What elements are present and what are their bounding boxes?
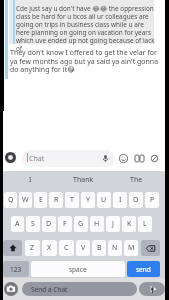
- button[interactable]: K: [122, 216, 136, 232]
- staticText: They don't know I offered to get the vel…: [10, 48, 160, 74]
- button[interactable]: I: [113, 192, 127, 208]
- staticText: Y: [86, 195, 90, 205]
- staticText: send: [136, 265, 151, 274]
- button[interactable]: Z: [25, 240, 40, 256]
- button[interactable]: Voice message: [98, 151, 112, 165]
- button[interactable]: B: [92, 240, 106, 256]
- button[interactable]: G: [74, 216, 88, 232]
- staticText: The: [130, 175, 143, 185]
- staticText: G: [78, 219, 84, 229]
- staticText: I: [119, 195, 122, 205]
- button[interactable]: E: [34, 192, 47, 208]
- staticText: V: [81, 243, 86, 253]
- button[interactable]: S: [26, 216, 40, 232]
- button[interactable]: Y: [81, 192, 95, 208]
- staticText: B: [97, 243, 102, 253]
- button[interactable]: Camera: [4, 282, 18, 296]
- button[interactable]: X: [42, 240, 57, 256]
- button[interactable]: F: [58, 216, 72, 232]
- staticText: Thank: [73, 175, 94, 185]
- staticText: P: [150, 195, 155, 205]
- button[interactable]: T: [65, 192, 79, 208]
- button[interactable]: Send a Chat: [22, 282, 137, 296]
- button[interactable]: Q: [4, 192, 17, 208]
- button[interactable]: O: [129, 192, 143, 208]
- staticText: N: [112, 243, 118, 253]
- button[interactable]: N: [108, 240, 122, 256]
- button[interactable]: Thank: [57, 171, 110, 189]
- button[interactable]: D: [42, 216, 56, 232]
- staticText: I: [29, 175, 32, 185]
- button[interactable]: send: [127, 261, 160, 277]
- button[interactable]: Shift: [3, 240, 22, 256]
- button[interactable]: Open camera: [5, 152, 16, 163]
- staticText: Cde just say u don't have 😂😂 the oppress…: [16, 4, 156, 53]
- button[interactable]: space: [31, 261, 125, 277]
- button[interactable]: V: [76, 240, 90, 256]
- staticText: F: [63, 219, 67, 229]
- button[interactable]: J: [106, 216, 120, 232]
- button[interactable]: I: [3, 171, 57, 189]
- button[interactable]: R: [49, 192, 63, 208]
- staticText: Z: [30, 243, 35, 253]
- staticText: U: [101, 195, 107, 205]
- staticText: T: [70, 195, 74, 205]
- staticText: L: [143, 219, 147, 229]
- staticText: X: [47, 243, 52, 253]
- staticText: Q: [8, 195, 14, 205]
- button[interactable]: W: [19, 192, 32, 208]
- staticText: Chat: [29, 154, 45, 164]
- button[interactable]: Voice note: [139, 282, 165, 296]
- button[interactable]: The: [110, 171, 163, 189]
- button[interactable]: P: [145, 192, 159, 208]
- button[interactable]: Emoji: [116, 151, 130, 165]
- button[interactable]: L: [138, 216, 152, 232]
- staticText: Send a Chat: [31, 285, 68, 294]
- staticText: A: [15, 219, 20, 229]
- staticText: E: [39, 195, 43, 205]
- staticText: K: [127, 219, 132, 229]
- staticText: J: [112, 219, 114, 229]
- button[interactable]: C: [59, 240, 74, 256]
- staticText: C: [64, 243, 69, 253]
- staticText: R: [54, 195, 59, 205]
- staticText: S: [31, 219, 35, 229]
- button[interactable]: Backspace: [141, 240, 160, 256]
- staticText: M: [128, 243, 135, 253]
- button[interactable]: 123: [3, 261, 29, 277]
- staticText: W: [22, 195, 29, 205]
- button[interactable]: Stickers: [132, 151, 146, 165]
- staticText: D: [46, 219, 52, 229]
- staticText: O: [133, 195, 139, 205]
- button[interactable]: U: [97, 192, 111, 208]
- staticText: H: [94, 219, 100, 229]
- button[interactable]: H: [90, 216, 104, 232]
- button[interactable]: M: [124, 240, 138, 256]
- staticText: space: [69, 265, 87, 274]
- button[interactable]: [22, 150, 115, 167]
- button[interactable]: Attach: [147, 151, 161, 165]
- staticText: 123: [10, 265, 22, 274]
- button[interactable]: A: [11, 216, 24, 232]
